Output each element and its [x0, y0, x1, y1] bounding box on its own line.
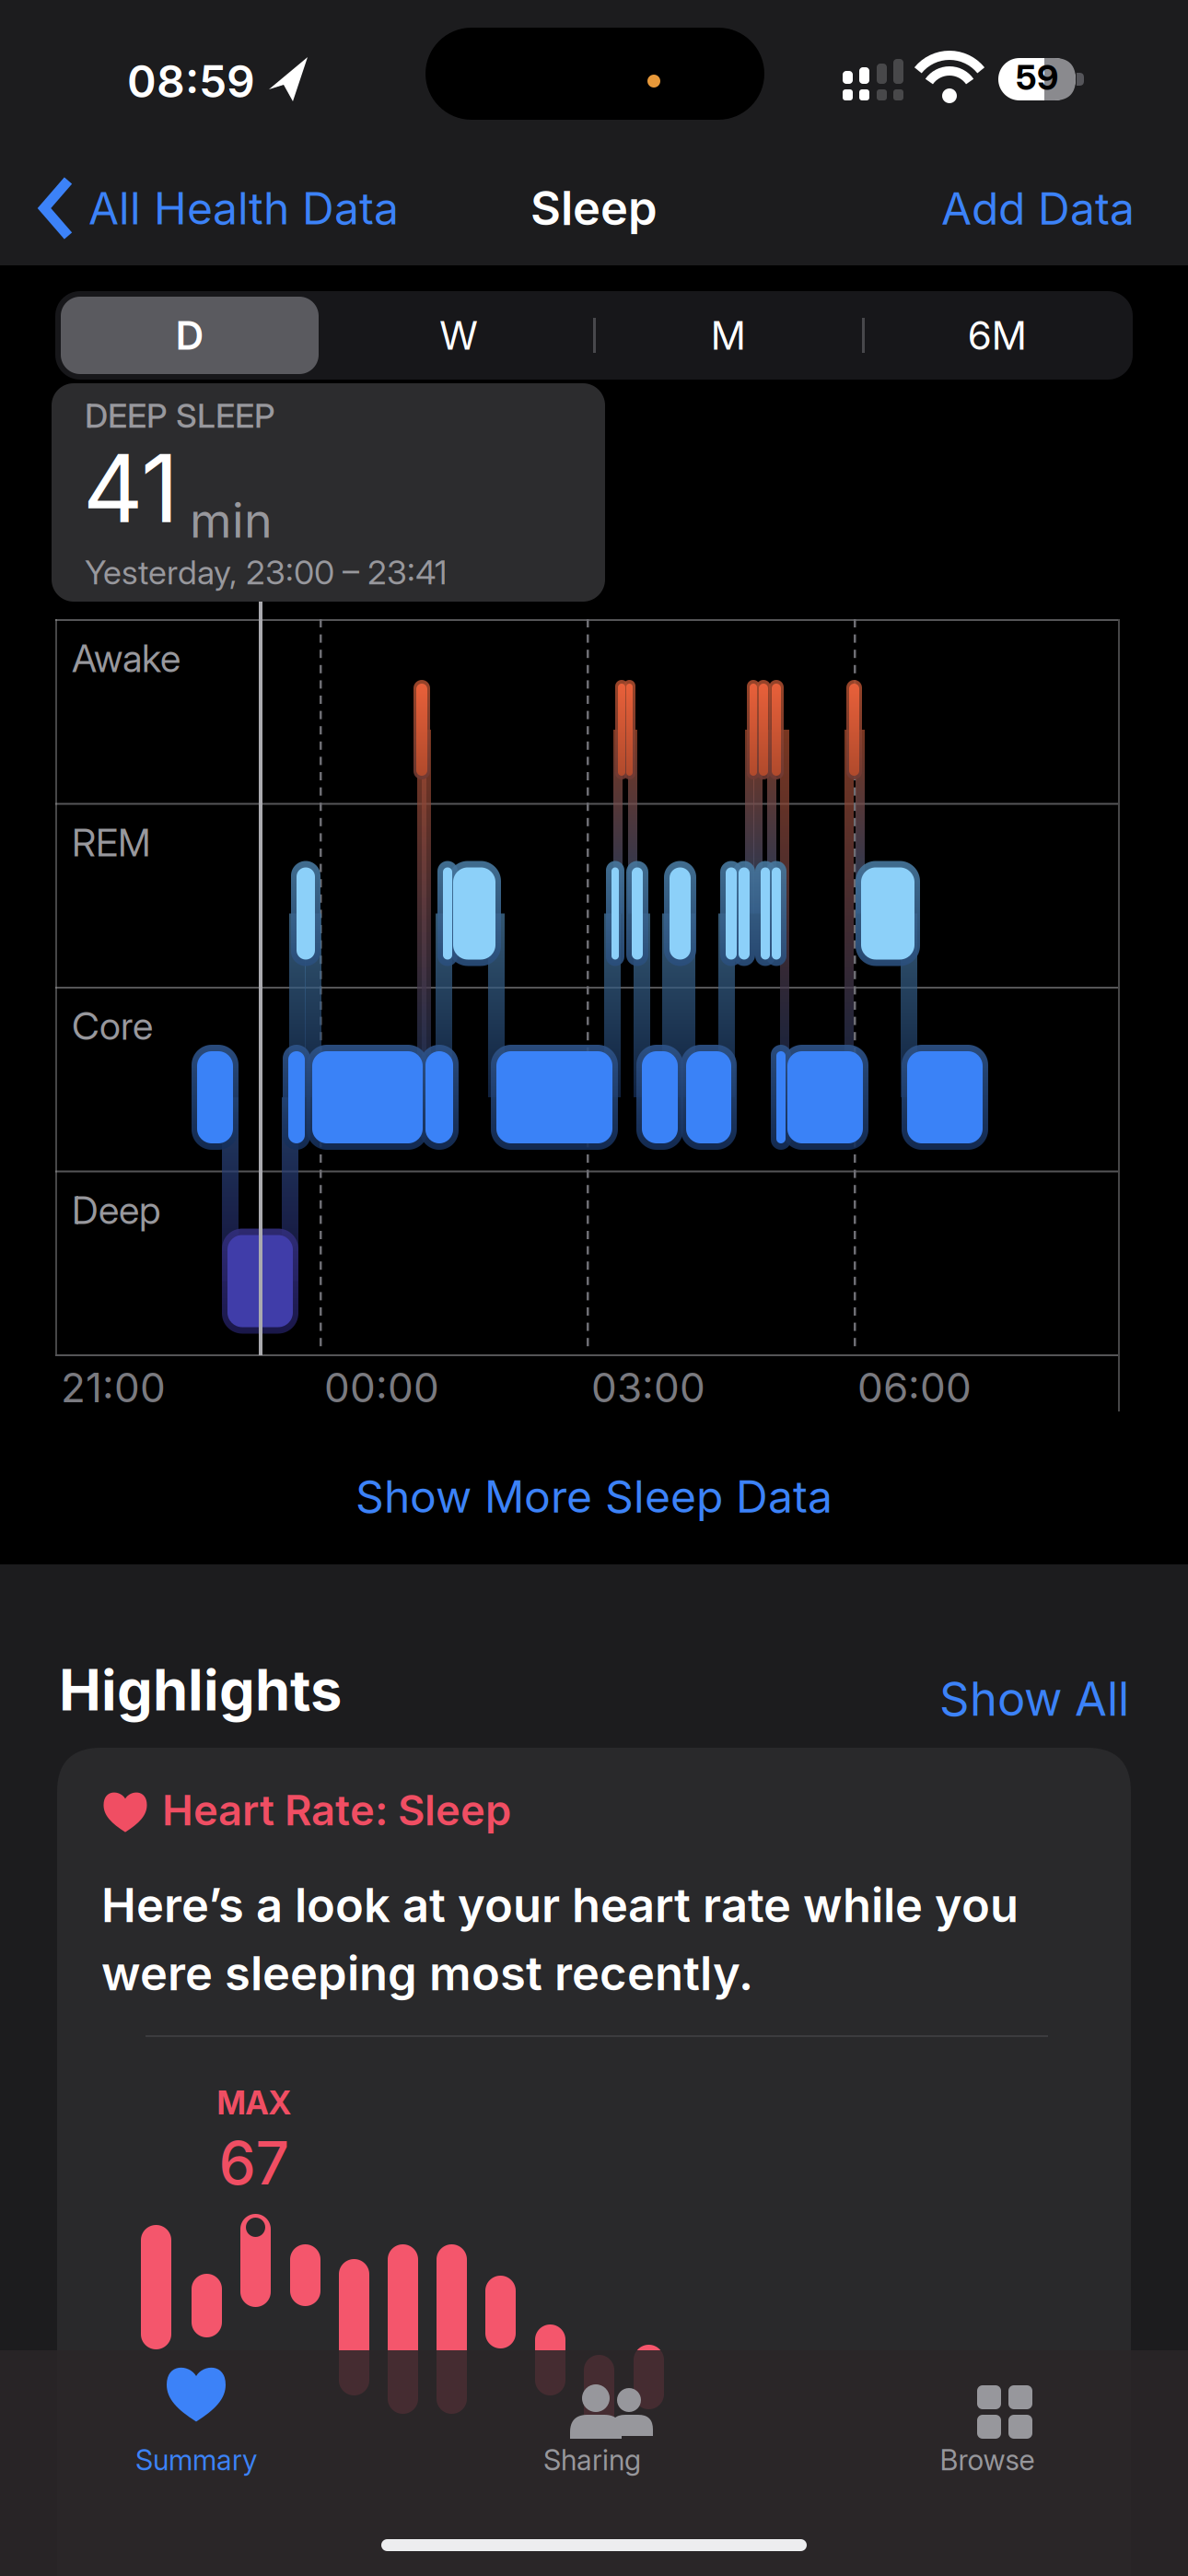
staticText: Add Data — [941, 182, 1135, 235]
staticText: All Health Data — [88, 182, 399, 234]
staticText: MAX — [217, 2084, 291, 2122]
button[interactable]: Show All — [0, 1671, 1129, 1726]
staticText: Show More Sleep Data — [355, 1470, 833, 1523]
staticText: Sharing — [543, 2443, 641, 2477]
staticText: 6M — [967, 312, 1027, 358]
staticText: Core — [72, 1003, 153, 1048]
staticText: were sleeping most recently. — [101, 1946, 753, 2001]
staticText: 00:00 — [324, 1364, 439, 1411]
button[interactable]: Show More Sleep Data — [0, 1470, 1188, 1523]
staticText: Summary — [135, 2443, 257, 2477]
button[interactable]: Add Data — [0, 182, 1135, 235]
staticText: Yesterday, 23:00 – 23:41 — [85, 553, 447, 592]
button[interactable]: 6M — [863, 291, 1132, 380]
button[interactable]: All Health Data — [44, 181, 399, 236]
staticText: DEEP SLEEP — [85, 396, 275, 435]
staticText: Show All — [939, 1671, 1129, 1726]
button[interactable]: Heart Rate: Sleep — [57, 1748, 1131, 2576]
staticText: Highlights — [59, 1657, 342, 1723]
staticText: Awake — [72, 636, 181, 681]
staticText: D — [175, 312, 204, 358]
staticText: Here’s a look at your heart rate while y… — [101, 1878, 1019, 1933]
button[interactable]: Sharing — [454, 2370, 730, 2477]
staticText: 21:00 — [61, 1364, 166, 1411]
button[interactable]: D — [55, 291, 324, 380]
staticText: Deep — [72, 1188, 160, 1233]
staticText: min — [190, 492, 273, 548]
staticText: 67 — [219, 2128, 290, 2198]
staticText: Heart Rate: Sleep — [162, 1786, 511, 1835]
staticText: 59 — [1016, 57, 1058, 98]
button[interactable]: Summary — [58, 2370, 334, 2477]
staticText: W — [439, 312, 478, 358]
button[interactable]: M — [594, 291, 863, 380]
button[interactable]: W — [324, 291, 593, 380]
staticText: 06:00 — [857, 1364, 972, 1411]
staticText: 08:59 — [127, 55, 255, 107]
staticText: Sleep — [530, 181, 658, 236]
staticText: Browse — [940, 2443, 1035, 2477]
button[interactable]: Browse — [849, 2370, 1125, 2477]
staticText: M — [710, 312, 746, 358]
staticText: REM — [72, 820, 151, 865]
staticText: 41 — [83, 433, 179, 543]
staticText: 03:00 — [591, 1364, 705, 1411]
